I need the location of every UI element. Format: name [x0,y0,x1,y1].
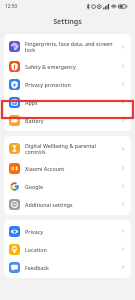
staticText: Settings [53,16,82,26]
button[interactable]: Xiaomi Account [4,159,131,177]
staticText: Digital Wellbeing & parental controls [25,142,117,156]
button[interactable]: Digital Wellbeing & parental controls [4,138,131,159]
staticText: 12:50 [5,3,18,10]
staticText: Location [25,246,117,253]
other: Apps highlighted [2,101,133,118]
button[interactable]: Apps [4,93,131,111]
staticText: Battery [25,117,117,124]
button[interactable]: Safety & emergency [4,57,131,75]
staticText: Safety & emergency [25,63,117,70]
staticText: Privacy protection [25,81,117,88]
button[interactable]: Google [4,177,131,195]
staticText: Google [25,183,117,190]
button[interactable]: Additional settings [4,195,131,213]
button[interactable]: Location [4,240,131,258]
button[interactable]: Privacy protection [4,75,131,93]
staticText: Xiaomi Account [25,165,117,172]
staticText: Apps [25,99,117,106]
staticText: Fingerprints, face data, and screen lock [25,40,117,54]
staticText: Feedback [25,264,117,271]
button[interactable]: Fingerprints, face data, and screen lock [4,36,131,57]
staticText: Additional settings [25,201,117,208]
button[interactable]: Privacy [4,222,131,240]
button[interactable]: Battery [4,111,131,129]
staticText: Privacy [25,228,117,235]
button[interactable]: Feedback [4,258,131,276]
